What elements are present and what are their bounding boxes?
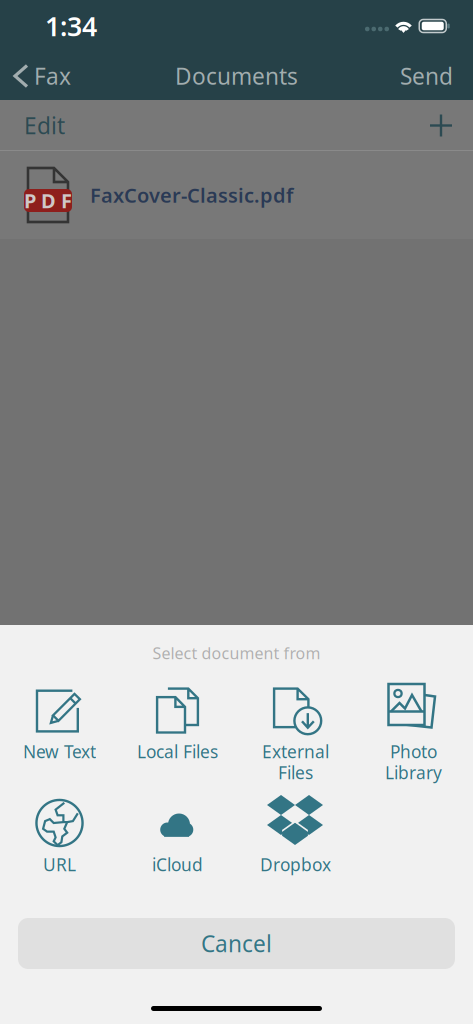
button[interactable]: Cancel	[18, 918, 455, 969]
staticText: Files	[278, 761, 313, 784]
staticText: P D F	[24, 187, 72, 214]
button[interactable]: Fax	[0, 52, 81, 100]
button[interactable]: iCloud	[118, 791, 236, 904]
button[interactable]: Local Files	[118, 678, 236, 791]
staticText: Documents	[175, 61, 298, 91]
button[interactable]: Send	[384, 52, 473, 100]
staticText: Cancel	[201, 928, 272, 958]
button[interactable]: Dropbox	[236, 791, 354, 904]
staticText: Dropbox	[260, 853, 331, 876]
staticText: URL	[43, 853, 76, 876]
button[interactable]: External	[236, 678, 354, 791]
button[interactable]: Add document	[410, 100, 473, 151]
staticText: Library	[385, 761, 442, 784]
staticText: External	[262, 740, 329, 763]
staticText: 1:34	[45, 8, 97, 44]
staticText: iCloud	[152, 853, 203, 876]
staticText: Photo	[390, 740, 437, 763]
staticText: Fax	[34, 61, 71, 91]
button[interactable]: Photo	[354, 678, 472, 791]
staticText: FaxCover-Classic.pdf	[90, 182, 293, 208]
button[interactable]: URL	[0, 791, 118, 904]
staticText: Edit	[24, 110, 65, 140]
staticText: Select document from	[152, 642, 320, 664]
staticText: Send	[400, 61, 453, 91]
button[interactable]: Edit	[0, 100, 83, 151]
button[interactable]: New Text	[0, 678, 118, 791]
staticText: New Text	[23, 740, 96, 763]
button[interactable]: P D F	[0, 151, 473, 239]
staticText: Local Files	[137, 740, 218, 763]
